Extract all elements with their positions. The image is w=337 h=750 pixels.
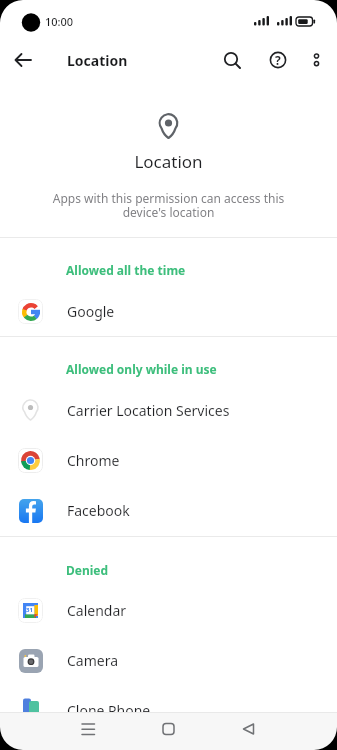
button[interactable]: 31 bbox=[0, 585, 337, 635]
button[interactable] bbox=[8, 45, 38, 75]
button[interactable]: Carrier Location Services bbox=[0, 385, 337, 435]
staticText: Camera bbox=[67, 651, 119, 670]
button[interactable]: Chrome bbox=[0, 435, 337, 485]
button[interactable] bbox=[303, 45, 331, 73]
staticText: Location bbox=[67, 51, 128, 70]
button[interactable]: ? bbox=[263, 45, 293, 75]
staticText: ? bbox=[275, 52, 281, 68]
button[interactable]: Facebook bbox=[0, 485, 337, 535]
staticText: 31 bbox=[26, 606, 33, 614]
button[interactable]: Clone Phone bbox=[0, 685, 337, 735]
button[interactable] bbox=[148, 712, 188, 750]
staticText: Allowed all the time bbox=[66, 262, 186, 278]
button[interactable] bbox=[228, 712, 268, 750]
button[interactable]: Camera bbox=[0, 635, 337, 685]
staticText: Allowed only while in use bbox=[66, 361, 217, 377]
staticText: Facebook bbox=[67, 501, 130, 520]
button[interactable] bbox=[68, 712, 108, 750]
staticText: 10:00 bbox=[45, 14, 74, 29]
staticText: Google bbox=[67, 302, 115, 321]
staticText: Location bbox=[0, 150, 337, 173]
staticText: Denied bbox=[66, 562, 109, 578]
staticText: Carrier Location Services bbox=[67, 401, 230, 420]
staticText: Clone Phone bbox=[67, 701, 151, 720]
button[interactable] bbox=[217, 45, 247, 75]
staticText: Apps with this permission can access thi… bbox=[0, 190, 337, 220]
staticText: Calendar bbox=[67, 601, 127, 620]
staticText: Chrome bbox=[67, 451, 120, 470]
button[interactable]: Google bbox=[0, 286, 337, 336]
